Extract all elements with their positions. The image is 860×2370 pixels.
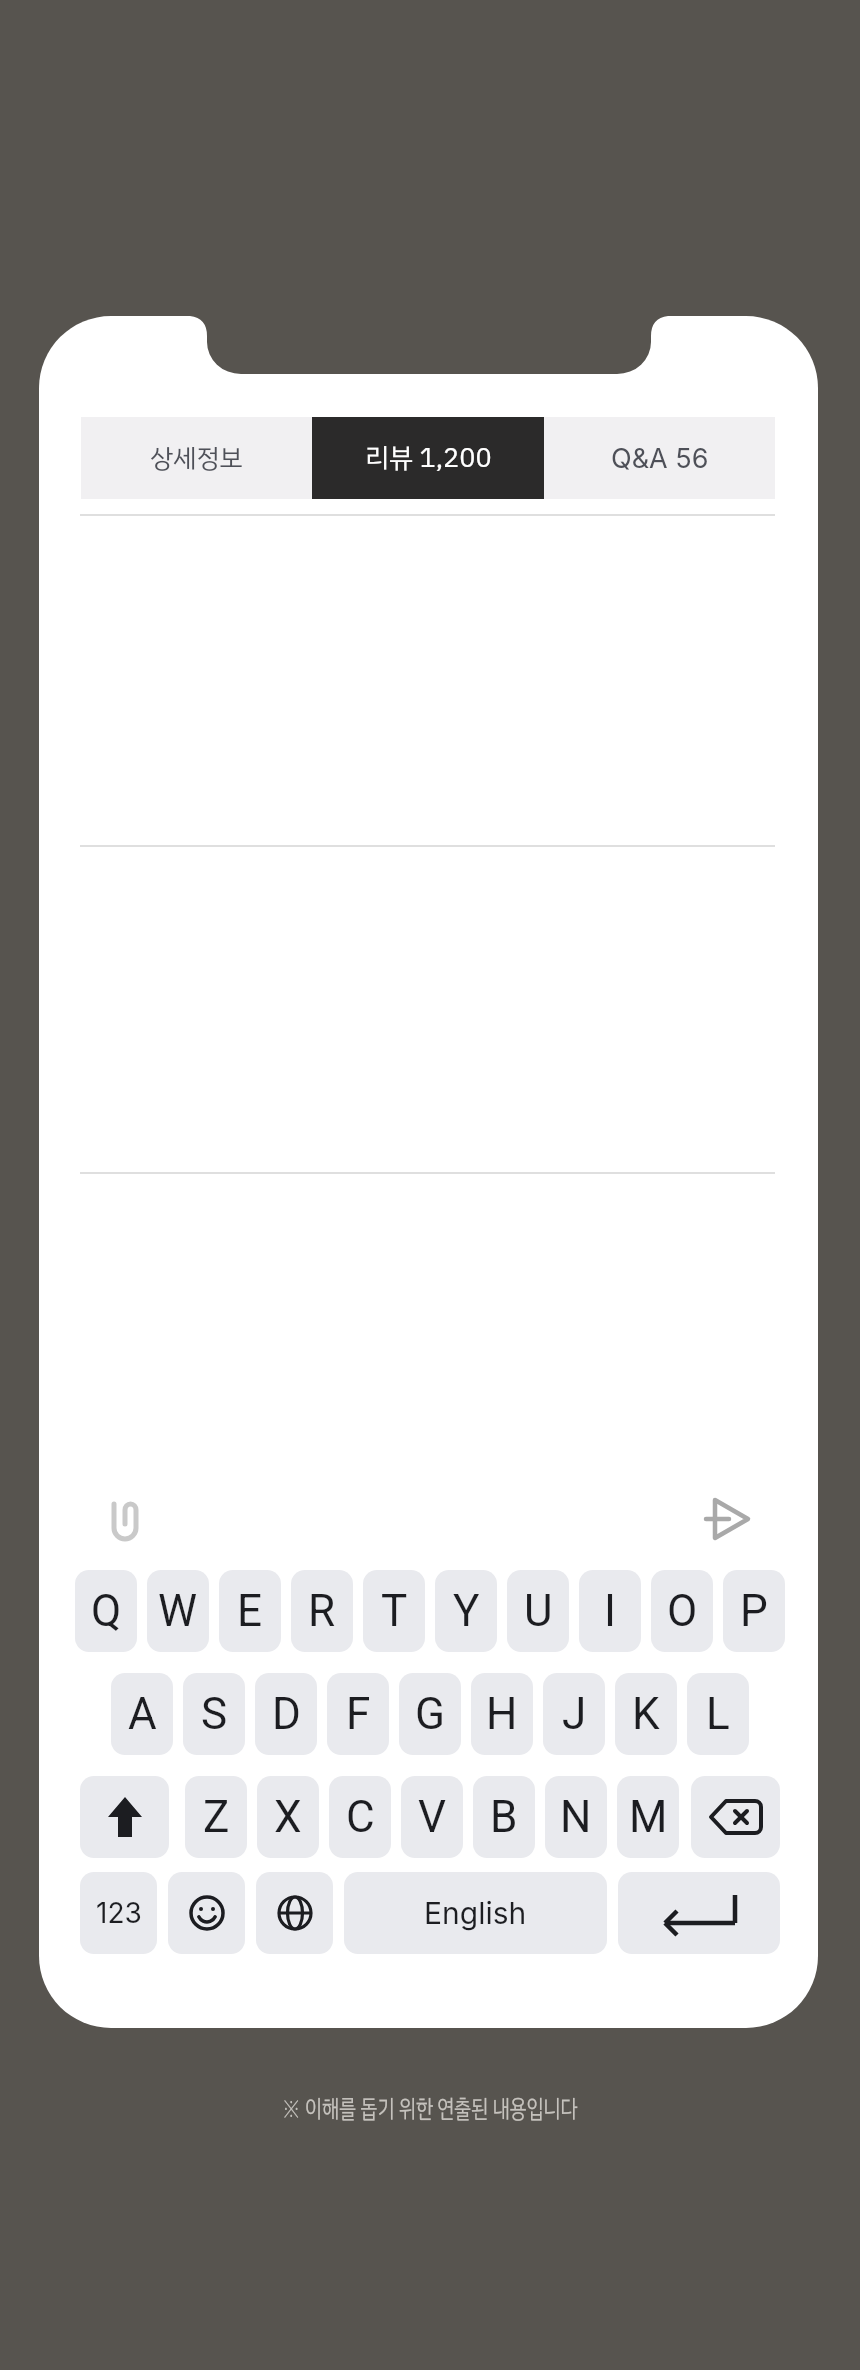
staticText: 123 bbox=[96, 1896, 142, 1930]
button[interactable]: 리뷰 1,200 bbox=[312, 417, 544, 499]
staticText: X bbox=[274, 1791, 302, 1843]
button[interactable]: A bbox=[111, 1673, 173, 1755]
staticText: Q bbox=[91, 1585, 122, 1637]
button[interactable] bbox=[691, 1776, 780, 1858]
staticText: E bbox=[237, 1585, 263, 1637]
button[interactable]: L bbox=[687, 1673, 749, 1755]
staticText: Y bbox=[453, 1585, 480, 1637]
button[interactable] bbox=[100, 1494, 148, 1542]
button[interactable]: Q&A 56 bbox=[544, 417, 775, 499]
button[interactable]: R bbox=[291, 1570, 353, 1652]
staticText: 리뷰 1,200 bbox=[365, 438, 492, 479]
staticText: V bbox=[418, 1791, 447, 1843]
staticText: C bbox=[346, 1791, 375, 1843]
staticText: O bbox=[667, 1585, 698, 1637]
staticText: Z bbox=[203, 1791, 230, 1843]
button[interactable] bbox=[80, 1776, 169, 1858]
button[interactable]: M bbox=[617, 1776, 679, 1858]
button[interactable]: O bbox=[651, 1570, 713, 1652]
staticText: B bbox=[490, 1791, 518, 1843]
button[interactable]: N bbox=[545, 1776, 607, 1858]
button[interactable]: Q bbox=[75, 1570, 137, 1652]
staticText: J bbox=[562, 1688, 587, 1740]
button[interactable]: English bbox=[344, 1872, 607, 1954]
staticText: I bbox=[604, 1585, 616, 1637]
staticText: T bbox=[381, 1585, 408, 1637]
staticText: P bbox=[740, 1585, 768, 1637]
button[interactable]: W bbox=[147, 1570, 209, 1652]
staticText: G bbox=[415, 1688, 445, 1740]
button[interactable]: G bbox=[399, 1673, 461, 1755]
staticText: Q&A 56 bbox=[611, 442, 709, 475]
button[interactable]: T bbox=[363, 1570, 425, 1652]
button[interactable]: K bbox=[615, 1673, 677, 1755]
button[interactable] bbox=[700, 1495, 752, 1543]
button[interactable]: J bbox=[543, 1673, 605, 1755]
button[interactable]: S bbox=[183, 1673, 245, 1755]
button[interactable]: C bbox=[329, 1776, 391, 1858]
button[interactable] bbox=[256, 1872, 333, 1954]
staticText: K bbox=[632, 1688, 660, 1740]
staticText: S bbox=[201, 1688, 228, 1740]
staticText: A bbox=[128, 1688, 157, 1740]
staticText: ※ 이해를 돕기 위한 연출된 내용입니다 bbox=[282, 2090, 578, 2126]
button[interactable] bbox=[168, 1872, 245, 1954]
button[interactable]: E bbox=[219, 1570, 281, 1652]
staticText: L bbox=[706, 1688, 730, 1740]
button[interactable]: V bbox=[401, 1776, 463, 1858]
staticText: R bbox=[308, 1585, 336, 1637]
staticText: M bbox=[629, 1791, 668, 1843]
button[interactable]: Y bbox=[435, 1570, 497, 1652]
button[interactable]: U bbox=[507, 1570, 569, 1652]
staticText: N bbox=[560, 1791, 592, 1843]
button[interactable]: Z bbox=[185, 1776, 247, 1858]
staticText: English bbox=[424, 1895, 527, 1931]
staticText: H bbox=[486, 1688, 518, 1740]
staticText: U bbox=[524, 1585, 553, 1637]
button[interactable]: I bbox=[579, 1570, 641, 1652]
button[interactable]: B bbox=[473, 1776, 535, 1858]
button[interactable]: F bbox=[327, 1673, 389, 1755]
staticText: D bbox=[272, 1688, 301, 1740]
staticText: F bbox=[346, 1688, 371, 1740]
button[interactable]: H bbox=[471, 1673, 533, 1755]
button[interactable]: D bbox=[255, 1673, 317, 1755]
staticText: W bbox=[158, 1585, 198, 1637]
staticText: 상세정보 bbox=[150, 439, 243, 478]
button[interactable]: X bbox=[257, 1776, 319, 1858]
button[interactable]: 상세정보 bbox=[81, 417, 312, 499]
button[interactable] bbox=[618, 1872, 780, 1954]
button[interactable]: P bbox=[723, 1570, 785, 1652]
button[interactable]: 123 bbox=[80, 1872, 157, 1954]
